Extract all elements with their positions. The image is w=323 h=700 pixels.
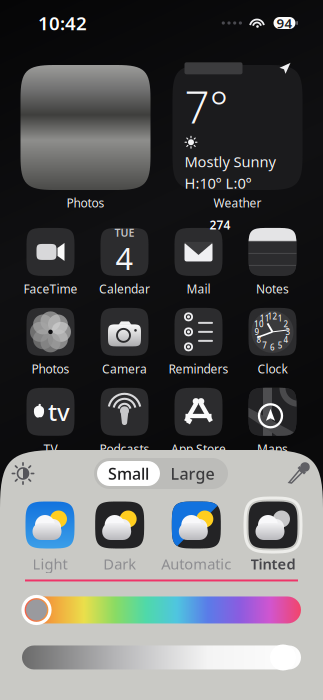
- staticText: 7°: [184, 77, 228, 136]
- staticText: H:10° L:0°: [184, 173, 251, 193]
- button[interactable]: 274: [161, 228, 235, 297]
- button[interactable]: TUE: [87, 228, 161, 297]
- staticText: 94: [276, 14, 292, 32]
- staticText: Podcasts: [99, 441, 149, 457]
- button[interactable]: 7°: [172, 65, 302, 211]
- button[interactable]: Photos: [20, 65, 150, 211]
- staticText: 4: [115, 238, 133, 278]
- staticText: Tinted: [250, 554, 295, 573]
- button[interactable]: Reminders: [161, 308, 235, 377]
- staticText: Notes: [256, 281, 289, 297]
- button[interactable]: Small: [97, 461, 160, 486]
- staticText: TV: [43, 441, 57, 457]
- button[interactable]: Notes: [235, 228, 309, 297]
- button[interactable]: Tinted: [245, 498, 301, 573]
- button[interactable]: Brightness: [11, 461, 35, 485]
- staticText: Reminders: [168, 361, 228, 377]
- button[interactable]: Large: [160, 461, 225, 486]
- button[interactable]: Podcasts: [87, 388, 161, 457]
- button[interactable]: Maps: [235, 388, 309, 457]
- staticText: Photos: [66, 195, 104, 211]
- staticText: 10:42: [38, 11, 87, 35]
- staticText: 5: [278, 340, 283, 351]
- staticText: App Store: [171, 441, 226, 457]
- staticText: 1: [278, 313, 283, 324]
- staticText: Maps: [257, 441, 288, 457]
- staticText: 2: [283, 319, 288, 329]
- staticText: 12: [267, 311, 277, 322]
- button[interactable]: 1: [235, 308, 309, 377]
- staticText: 3: [286, 327, 291, 337]
- staticText: Mostly Sunny: [184, 152, 275, 171]
- button[interactable]: Dark: [92, 498, 148, 573]
- staticText: 4: [283, 334, 288, 345]
- staticText: Large: [170, 463, 214, 484]
- staticText: FaceTime: [23, 281, 77, 297]
- staticText: Small: [108, 463, 149, 484]
- staticText: Dark: [103, 554, 136, 573]
- staticText: 274: [209, 217, 230, 233]
- staticText: 10: [254, 319, 264, 329]
- staticText: Automatic: [161, 554, 231, 573]
- button[interactable]: App Store: [161, 388, 235, 457]
- staticText: 7: [262, 340, 267, 351]
- button[interactable]: Color picker: [287, 461, 311, 485]
- button[interactable]: Photos: [13, 308, 87, 377]
- staticText: 9: [254, 327, 259, 337]
- button[interactable]: Automatic: [161, 498, 231, 573]
- staticText: TUE: [114, 225, 134, 240]
- button[interactable]: FaceTime: [13, 228, 87, 297]
- staticText: 8: [256, 334, 261, 345]
- button[interactable]: Camera: [87, 308, 161, 377]
- staticText: Camera: [102, 361, 147, 377]
- staticText: tv: [48, 396, 70, 428]
- staticText: Photos: [31, 361, 69, 377]
- button[interactable]: tv: [13, 388, 87, 457]
- button[interactable]: Light: [22, 498, 78, 573]
- staticText: Weather: [213, 195, 261, 211]
- staticText: 11: [260, 313, 270, 324]
- staticText: Calendar: [99, 281, 150, 297]
- staticText: Light: [32, 554, 67, 573]
- staticText: Clock: [257, 361, 287, 377]
- staticText: 6: [270, 342, 275, 353]
- staticText: Mail: [186, 281, 210, 297]
